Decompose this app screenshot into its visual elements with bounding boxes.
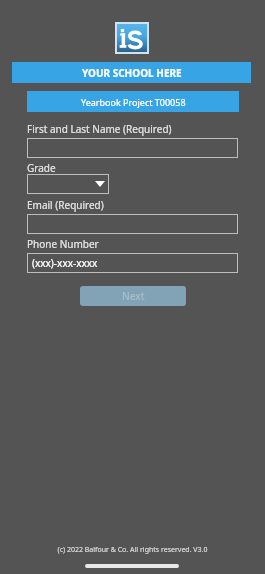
other: iS logo: [117, 24, 147, 52]
staticText: Email (Required): [27, 198, 104, 212]
button[interactable]: Email input: [27, 214, 238, 234]
button[interactable]: Phone number input: [27, 253, 238, 273]
button[interactable]: Grade dropdown: [27, 174, 109, 194]
button[interactable]: Next: [80, 286, 186, 306]
staticText: Phone Number: [27, 237, 99, 251]
staticText: Yearbook Project T00058: [81, 96, 186, 108]
staticText: Next: [122, 289, 145, 303]
button[interactable]: First and last name input: [27, 138, 238, 158]
staticText: (xxx)-xxx-xxxx: [32, 256, 98, 270]
button[interactable]: YOUR SCHOOL HERE: [12, 62, 251, 83]
staticText: YOUR SCHOOL HERE: [82, 66, 182, 80]
staticText: Grade: [27, 161, 56, 175]
staticText: First and Last Name (Required): [27, 122, 172, 136]
staticText: (c) 2022 Balfour & Co. All rights reserv…: [0, 545, 265, 555]
button[interactable]: Yearbook Project T00058: [27, 91, 239, 112]
